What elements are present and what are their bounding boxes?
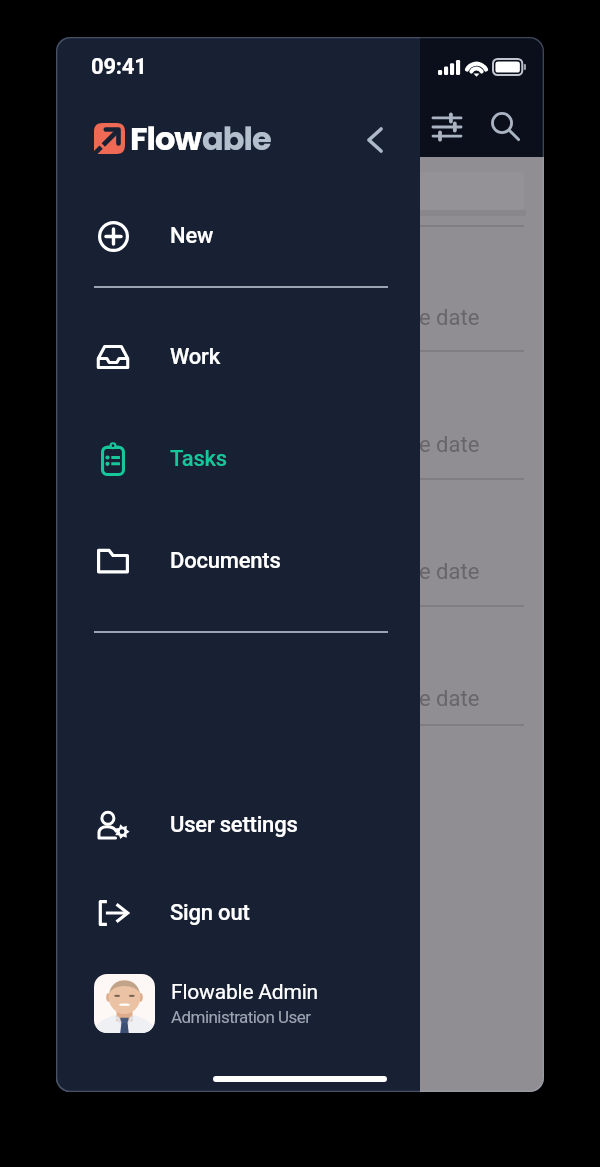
staticText: Work <box>170 344 220 370</box>
staticText: User settings <box>170 812 298 838</box>
staticText: e date <box>419 686 480 712</box>
button[interactable]: New <box>56 203 420 269</box>
staticText: e date <box>419 305 480 331</box>
staticText: New <box>170 223 214 249</box>
button[interactable]: Flowable Admin <box>56 965 420 1041</box>
staticText: Sign out <box>170 900 250 926</box>
staticText: Flowable Admin <box>171 980 318 1005</box>
staticText: Documents <box>170 548 281 574</box>
button[interactable]: User settings <box>56 792 420 858</box>
staticText: e date <box>419 432 480 458</box>
button[interactable]: Sign out <box>56 880 420 946</box>
staticText: Flow <box>130 116 202 161</box>
button[interactable]: Close navigation drawer <box>347 112 403 168</box>
staticText: Administration User <box>171 1007 311 1027</box>
button[interactable]: Work <box>56 324 420 390</box>
staticText: e date <box>419 559 480 585</box>
button[interactable]: Documents <box>56 528 420 594</box>
button[interactable]: Filter <box>420 100 473 153</box>
staticText: able <box>202 116 271 161</box>
staticText: 09:41 <box>91 54 147 80</box>
button[interactable]: Search <box>479 100 532 153</box>
staticText: Tasks <box>170 446 227 472</box>
button[interactable]: Tasks <box>56 426 420 492</box>
